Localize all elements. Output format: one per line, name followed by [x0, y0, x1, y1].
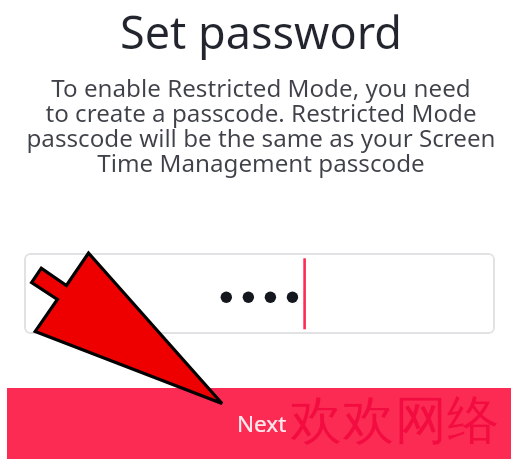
staticText: Set password — [4, 1, 514, 62]
staticText: Next — [237, 408, 287, 439]
staticText: To enable Restricted Mode, you need to c… — [4, 71, 514, 179]
button[interactable]: Passcode input field — [24, 253, 495, 334]
other: Annotation arrow pointing at the Next bu… — [0, 0, 514, 459]
button[interactable]: Next — [7, 388, 511, 459]
staticText: 欢欢网络 — [290, 388, 500, 454]
